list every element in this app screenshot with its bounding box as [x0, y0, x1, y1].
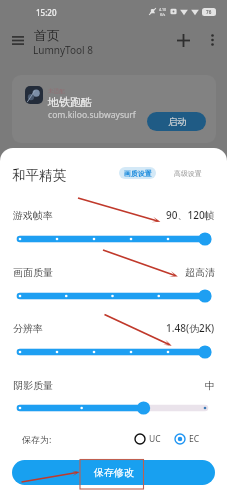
button[interactable]: 未适配	[12, 75, 216, 143]
staticText: 76	[206, 9, 212, 15]
staticText: 15:20	[36, 7, 57, 18]
staticText: K/s	[160, 12, 166, 16]
staticText: UC	[149, 433, 161, 445]
staticText: 中	[205, 379, 215, 392]
staticText: 首页	[34, 27, 60, 43]
staticText: 90、120帧	[166, 208, 215, 222]
staticText: 和平精英	[12, 167, 66, 184]
button[interactable]: More options	[200, 28, 224, 52]
button[interactable]: EC	[174, 433, 202, 445]
staticText: 分辨率	[13, 322, 43, 335]
button[interactable]: 启动	[147, 112, 206, 131]
button[interactable]: Menu	[6, 28, 30, 52]
staticText: 阴影质量	[13, 379, 53, 392]
staticText: 4.10	[159, 7, 167, 12]
staticText: com.kiloo.subwaysurf	[48, 109, 136, 121]
staticText: 高级设置	[174, 169, 202, 178]
button[interactable]: 保存修改	[12, 460, 215, 485]
staticText: 地铁跑酷	[48, 95, 92, 109]
staticText: 画质设置	[124, 169, 152, 178]
staticText: 超高清	[185, 266, 215, 279]
staticText: 游戏帧率	[13, 209, 53, 222]
staticText: 保存为:	[22, 433, 52, 444]
button[interactable]: 高级设置	[170, 167, 205, 179]
button[interactable]: Add	[171, 28, 195, 52]
staticText: EC	[189, 433, 200, 445]
staticText: 保存修改	[94, 466, 134, 479]
staticText: 1.48(伪2K)	[166, 321, 215, 335]
button[interactable]: UC	[134, 433, 162, 445]
staticText: 未适配	[48, 88, 65, 95]
staticText: 启动	[168, 116, 186, 127]
button[interactable]: 画质设置	[119, 167, 156, 179]
staticText: LumnyTool 8	[33, 43, 93, 57]
staticText: 画面质量	[13, 266, 53, 279]
